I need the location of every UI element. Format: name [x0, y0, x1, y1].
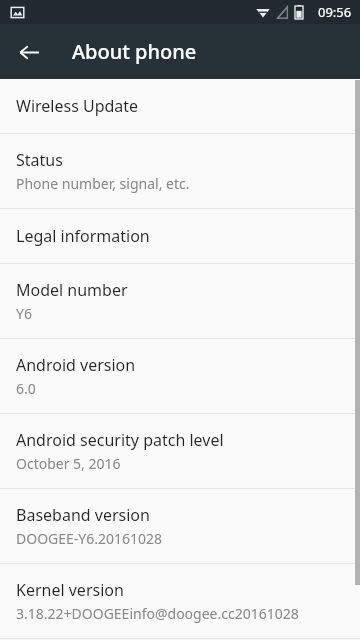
- button[interactable]: Baseband version: [0, 489, 360, 563]
- button[interactable]: Android security patch level: [0, 414, 360, 488]
- button[interactable]: Back: [9, 32, 49, 72]
- staticText: October 5, 2016: [16, 454, 121, 473]
- button[interactable]: Kernel version: [0, 564, 360, 638]
- staticText: Android security patch level: [16, 429, 224, 451]
- staticText: Android version: [16, 354, 136, 376]
- staticText: 09:56: [318, 3, 352, 21]
- staticText: Y6: [16, 304, 32, 323]
- button[interactable]: Wireless Update: [0, 79, 360, 133]
- button[interactable]: Android version: [0, 339, 360, 413]
- staticText: Phone number, signal, etc.: [16, 174, 190, 193]
- staticText: DOOGEE-Y6.20161028: [16, 529, 163, 548]
- staticText: About phone: [72, 38, 197, 65]
- button[interactable]: Legal information: [0, 209, 360, 263]
- staticText: Model number: [16, 279, 128, 301]
- staticText: 6.0: [16, 379, 36, 398]
- staticText: Wireless Update: [16, 95, 139, 117]
- staticText: Legal information: [16, 225, 150, 247]
- staticText: Baseband version: [16, 504, 150, 526]
- button[interactable]: Model number: [0, 264, 360, 338]
- button[interactable]: Status: [0, 134, 360, 208]
- staticText: Kernel version: [16, 579, 124, 601]
- staticText: Status: [16, 149, 63, 171]
- staticText: 3.18.22+DOOGEEinfo@doogee.cc20161028: [16, 604, 299, 623]
